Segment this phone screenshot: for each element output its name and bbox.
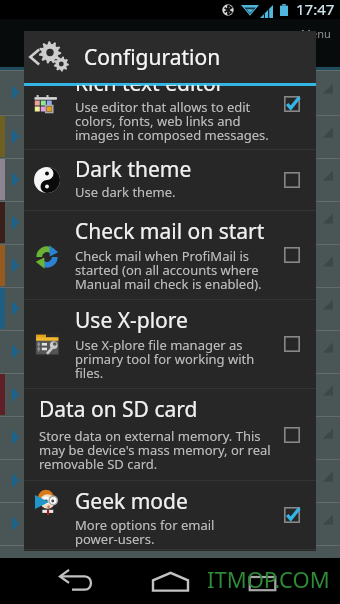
staticText: Configuration: [84, 43, 221, 72]
staticText: Check mail on start: [75, 217, 265, 246]
staticText: Use dark theme.: [75, 183, 176, 201]
staticText: Geek mode: [75, 487, 188, 516]
button[interactable]: Configuration: [24, 31, 316, 83]
button[interactable]: Geek mode: [24, 481, 316, 550]
button[interactable]: Use X-plore: [24, 300, 316, 389]
button[interactable]: Recent apps: [226, 558, 298, 604]
button[interactable]: Check mail on start: [24, 211, 316, 300]
staticText: More options for email power-users.: [75, 516, 215, 548]
staticText: Use X-plore: [75, 306, 188, 335]
staticText: Check mail when ProfiMail is started (on…: [75, 247, 262, 293]
button[interactable]: Back: [38, 558, 114, 604]
staticText: Rich text editor: [75, 85, 225, 98]
staticText: Menu: [301, 26, 331, 41]
staticText: 17:47: [296, 0, 335, 18]
button[interactable]: Dark theme: [24, 150, 316, 211]
staticText: Store data on external memory. This may …: [39, 427, 271, 473]
button[interactable]: Home: [130, 558, 210, 604]
staticText: Use editor that allows to edit colors, f…: [75, 98, 269, 144]
staticText: ITMOP.COM: [207, 564, 330, 594]
button[interactable]: Rich text editor: [24, 85, 316, 150]
staticText: Data on SD card: [39, 395, 198, 424]
button[interactable]: Data on SD card: [24, 389, 316, 481]
staticText: Dark theme: [75, 155, 192, 184]
staticText: Use X-plore file manager as primary tool…: [75, 336, 255, 382]
